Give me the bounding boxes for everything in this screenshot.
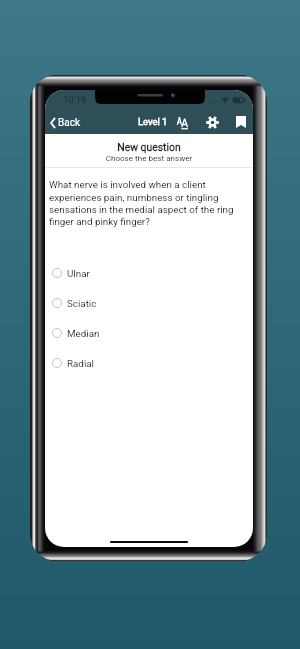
staticText: 10:19 [63,94,86,105]
staticText: New question [45,141,253,153]
staticText: Median [67,328,100,339]
button[interactable]: Back [50,112,81,133]
staticText: Choose the best answer [45,153,253,162]
button[interactable]: Radial [45,348,253,378]
button[interactable]: Ulnar [45,258,253,288]
staticText: Level 1 [138,116,168,127]
staticText: Back [58,117,81,129]
staticText: What nerve is involved when a client exp… [49,179,249,227]
button[interactable]: Sciatic [45,288,253,318]
button[interactable]: Text size [172,111,193,134]
staticText: Radial [67,358,94,369]
button[interactable]: Settings [201,112,223,133]
staticText: Ulnar [67,268,90,279]
staticText: Sciatic [67,298,97,309]
button[interactable]: Level 1 [138,112,168,130]
button[interactable]: Bookmark [230,112,251,132]
button[interactable]: Median [45,318,253,348]
